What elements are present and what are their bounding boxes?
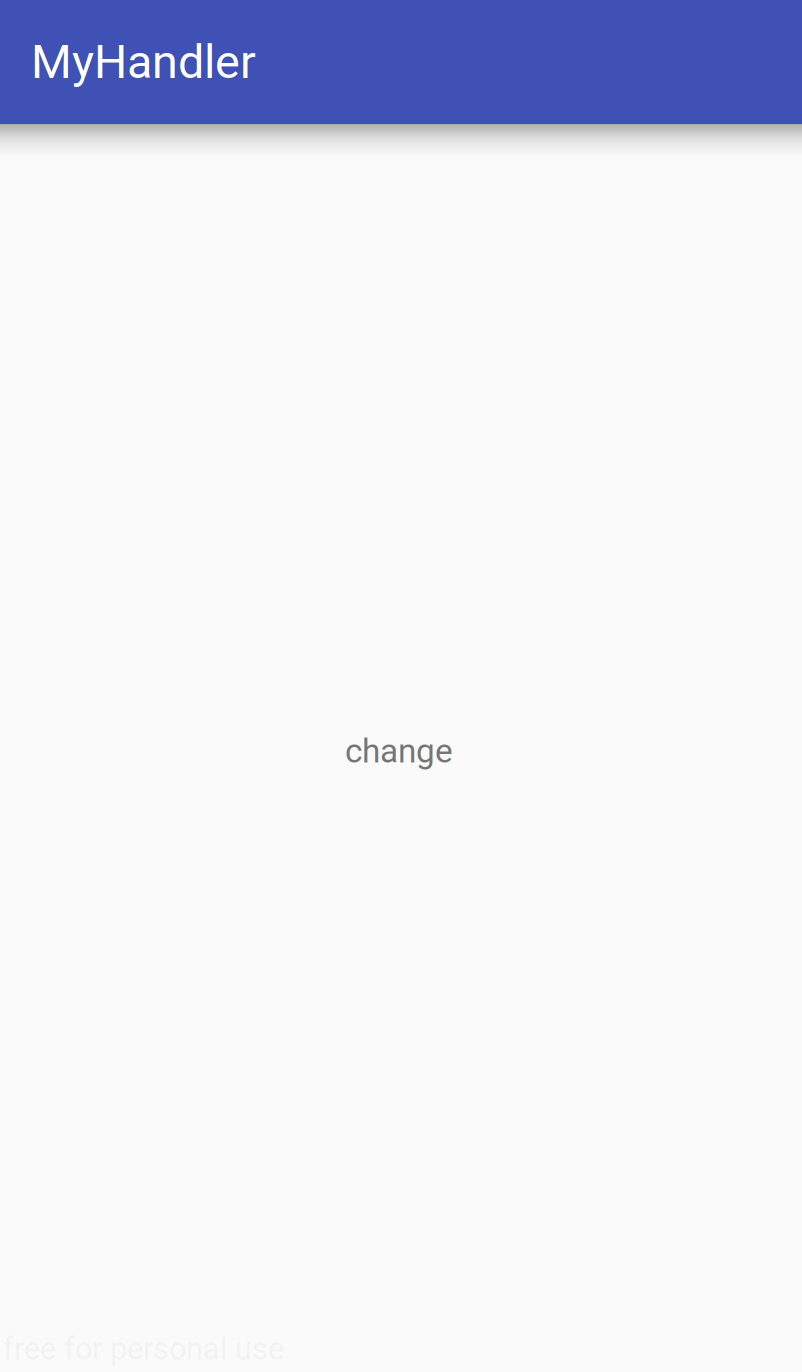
staticText: change — [345, 731, 453, 771]
staticText: MyHandler — [31, 35, 256, 89]
button[interactable]: MyHandler — [0, 0, 802, 124]
button[interactable]: change — [345, 731, 453, 771]
